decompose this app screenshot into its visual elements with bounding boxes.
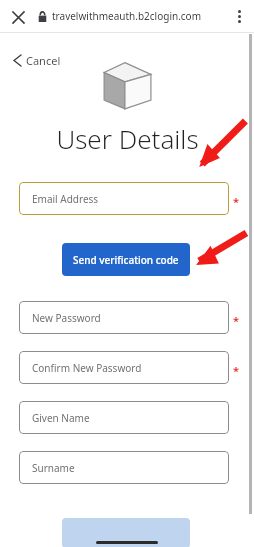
staticText: Confirm New Password	[32, 361, 142, 375]
staticText: *	[233, 194, 239, 209]
staticText: Email Address	[32, 192, 99, 206]
button[interactable]: Cancel	[12, 50, 63, 70]
staticText: User Details	[56, 121, 199, 156]
button[interactable]: Given Name	[19, 401, 229, 434]
staticText: Given Name	[32, 411, 90, 425]
staticText: New Password	[32, 311, 101, 325]
button[interactable]: New Password	[19, 301, 229, 334]
button[interactable]: Close	[6, 5, 30, 29]
staticText: *	[233, 363, 239, 378]
button[interactable]: More options	[228, 5, 250, 27]
staticText: *	[233, 313, 239, 328]
staticText: Surname	[32, 461, 75, 475]
staticText: Send verification code	[73, 253, 179, 267]
staticText: Cancel	[26, 53, 61, 68]
button[interactable]: Confirm New Password	[19, 351, 229, 384]
button[interactable]: Send verification code	[62, 243, 190, 276]
staticText: travelwithmeauth.b2clogin.com	[52, 9, 202, 23]
button[interactable]: Email Address	[19, 182, 229, 215]
button[interactable]: Surname	[19, 451, 229, 484]
button[interactable]	[62, 518, 190, 547]
